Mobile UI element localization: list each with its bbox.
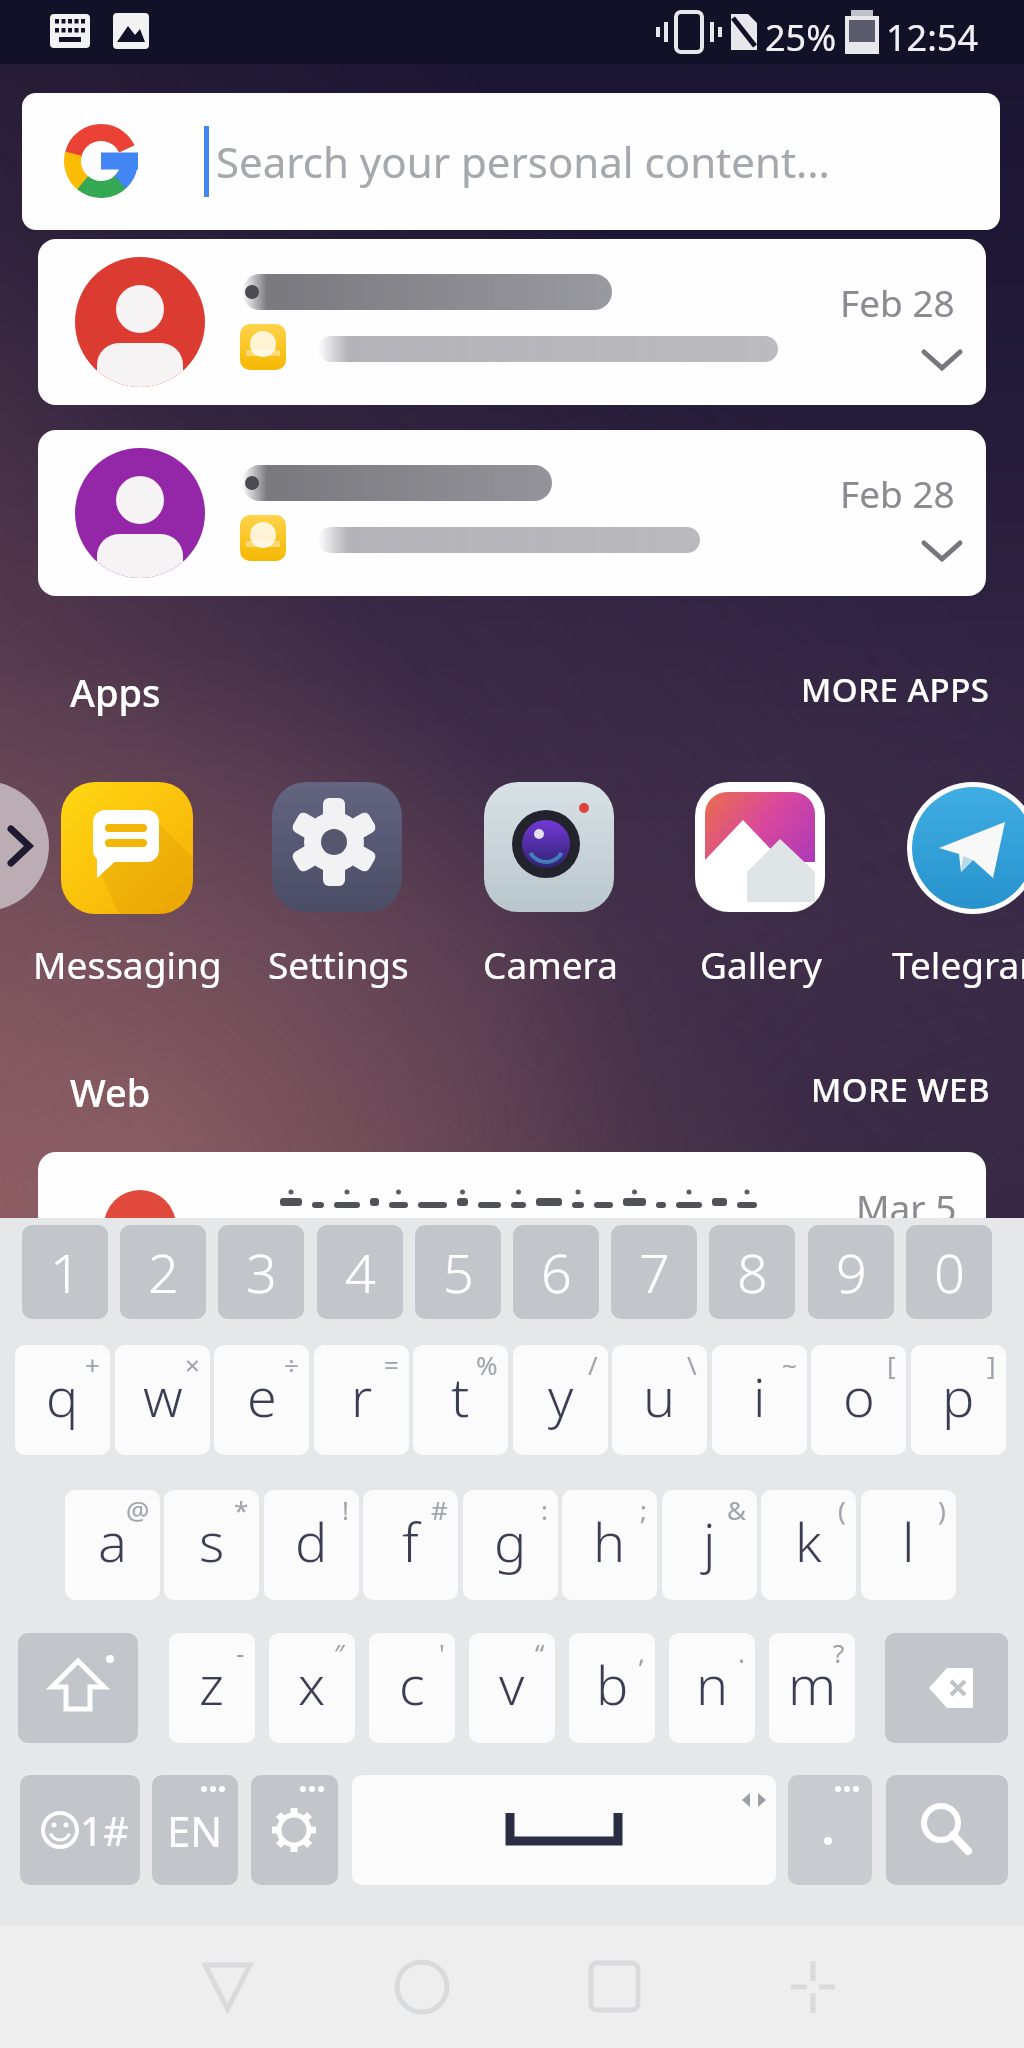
button[interactable]: 1 (22, 1225, 108, 1319)
button[interactable]: 2 (120, 1225, 206, 1319)
staticText: \ (687, 1347, 697, 1382)
button[interactable]: 7 (611, 1225, 697, 1319)
button[interactable] (886, 1775, 1008, 1885)
staticText: ~ (782, 1347, 797, 1382)
button[interactable]: e (214, 1345, 309, 1455)
button[interactable] (484, 782, 616, 914)
staticText: % (476, 1347, 498, 1382)
button[interactable] (765, 1945, 860, 2030)
staticText: 4 (345, 1235, 376, 1309)
staticText: Feb 28 (840, 277, 955, 327)
button[interactable]: d (264, 1490, 359, 1600)
button[interactable] (272, 782, 404, 914)
staticText: Settings (268, 939, 409, 989)
staticText: g (494, 1504, 527, 1578)
button[interactable]: n (669, 1633, 755, 1743)
staticText: u (643, 1359, 676, 1433)
button[interactable]: 3 (218, 1225, 304, 1319)
staticText: j (703, 1504, 716, 1578)
button[interactable]: o (811, 1345, 906, 1455)
button[interactable]: v (469, 1633, 555, 1743)
staticText: ; (640, 1492, 647, 1527)
staticText: o (843, 1359, 875, 1433)
staticText: Messaging (33, 939, 222, 989)
button[interactable] (907, 782, 1024, 914)
button[interactable]: 8 (709, 1225, 795, 1319)
button[interactable] (375, 1945, 470, 2030)
button[interactable]: s (164, 1490, 259, 1600)
button[interactable]: Feb 28 (38, 239, 986, 405)
button[interactable]: 6 (513, 1225, 599, 1319)
button[interactable]: m (769, 1633, 855, 1743)
staticText: Gallery (700, 939, 822, 989)
button[interactable]: 4 (317, 1225, 403, 1319)
staticText: MORE APPS (801, 667, 990, 712)
button[interactable]: c (369, 1633, 455, 1743)
staticText: x (298, 1647, 326, 1721)
button[interactable]: i (712, 1345, 807, 1455)
button[interactable] (352, 1775, 776, 1885)
staticText: m (788, 1647, 837, 1721)
button[interactable]: Mar 5 (38, 1152, 986, 1218)
button[interactable]: h (562, 1490, 657, 1600)
staticText: Mar 5 (856, 1182, 957, 1218)
button[interactable]: 5 (415, 1225, 501, 1319)
button[interactable]: u (612, 1345, 707, 1455)
button[interactable]: MORE APPS (780, 664, 990, 714)
button[interactable]: x (269, 1633, 355, 1743)
button[interactable] (18, 1633, 138, 1743)
staticText: ) (938, 1492, 946, 1527)
staticText: z (199, 1647, 225, 1721)
staticText: t (451, 1359, 470, 1433)
button[interactable]: f (363, 1490, 458, 1600)
button[interactable]: k (761, 1490, 856, 1600)
button[interactable] (788, 1775, 872, 1885)
button[interactable]: 0 (906, 1225, 992, 1319)
staticText: “ (535, 1635, 545, 1670)
button[interactable] (61, 782, 193, 914)
staticText: q (46, 1359, 79, 1433)
button[interactable] (885, 1633, 1008, 1743)
staticText: MORE WEB (811, 1067, 990, 1112)
button[interactable]: Search your personal content... (22, 93, 1000, 230)
button[interactable]: 1# (20, 1775, 140, 1885)
staticText: 3 (246, 1235, 277, 1309)
button[interactable] (695, 782, 827, 914)
button[interactable] (570, 1945, 665, 2030)
staticText: / (588, 1347, 598, 1382)
button[interactable] (906, 344, 978, 384)
button[interactable]: 9 (808, 1225, 894, 1319)
button[interactable]: l (861, 1490, 956, 1600)
button[interactable]: EN (152, 1775, 238, 1885)
staticText: i (753, 1359, 766, 1433)
staticText: , (638, 1635, 645, 1670)
button[interactable]: y (513, 1345, 608, 1455)
button[interactable]: w (115, 1345, 210, 1455)
button[interactable]: q (15, 1345, 110, 1455)
staticText: Apps (70, 666, 161, 718)
staticText: 9 (836, 1235, 867, 1309)
staticText: . (738, 1635, 745, 1670)
staticText: p (942, 1359, 975, 1433)
button[interactable] (251, 1775, 338, 1885)
button[interactable]: a (65, 1490, 160, 1600)
button[interactable]: t (413, 1345, 508, 1455)
staticText: Search your personal content... (216, 133, 830, 190)
staticText: l (902, 1504, 915, 1578)
button[interactable]: j (662, 1490, 757, 1600)
staticText: Feb 28 (840, 468, 955, 518)
button[interactable]: g (463, 1490, 558, 1600)
button[interactable]: Feb 28 (38, 430, 986, 596)
button[interactable]: b (569, 1633, 655, 1743)
button[interactable]: MORE WEB (790, 1064, 990, 1114)
button[interactable]: z (169, 1633, 255, 1743)
staticText: EN (167, 1802, 223, 1859)
staticText: c (399, 1647, 425, 1721)
staticText: n (696, 1647, 729, 1721)
button[interactable]: p (911, 1345, 1006, 1455)
button[interactable]: r (314, 1345, 409, 1455)
button[interactable] (906, 535, 978, 575)
button[interactable] (180, 1945, 275, 2030)
staticText: 25% (765, 13, 837, 62)
staticText: Web (70, 1066, 151, 1118)
